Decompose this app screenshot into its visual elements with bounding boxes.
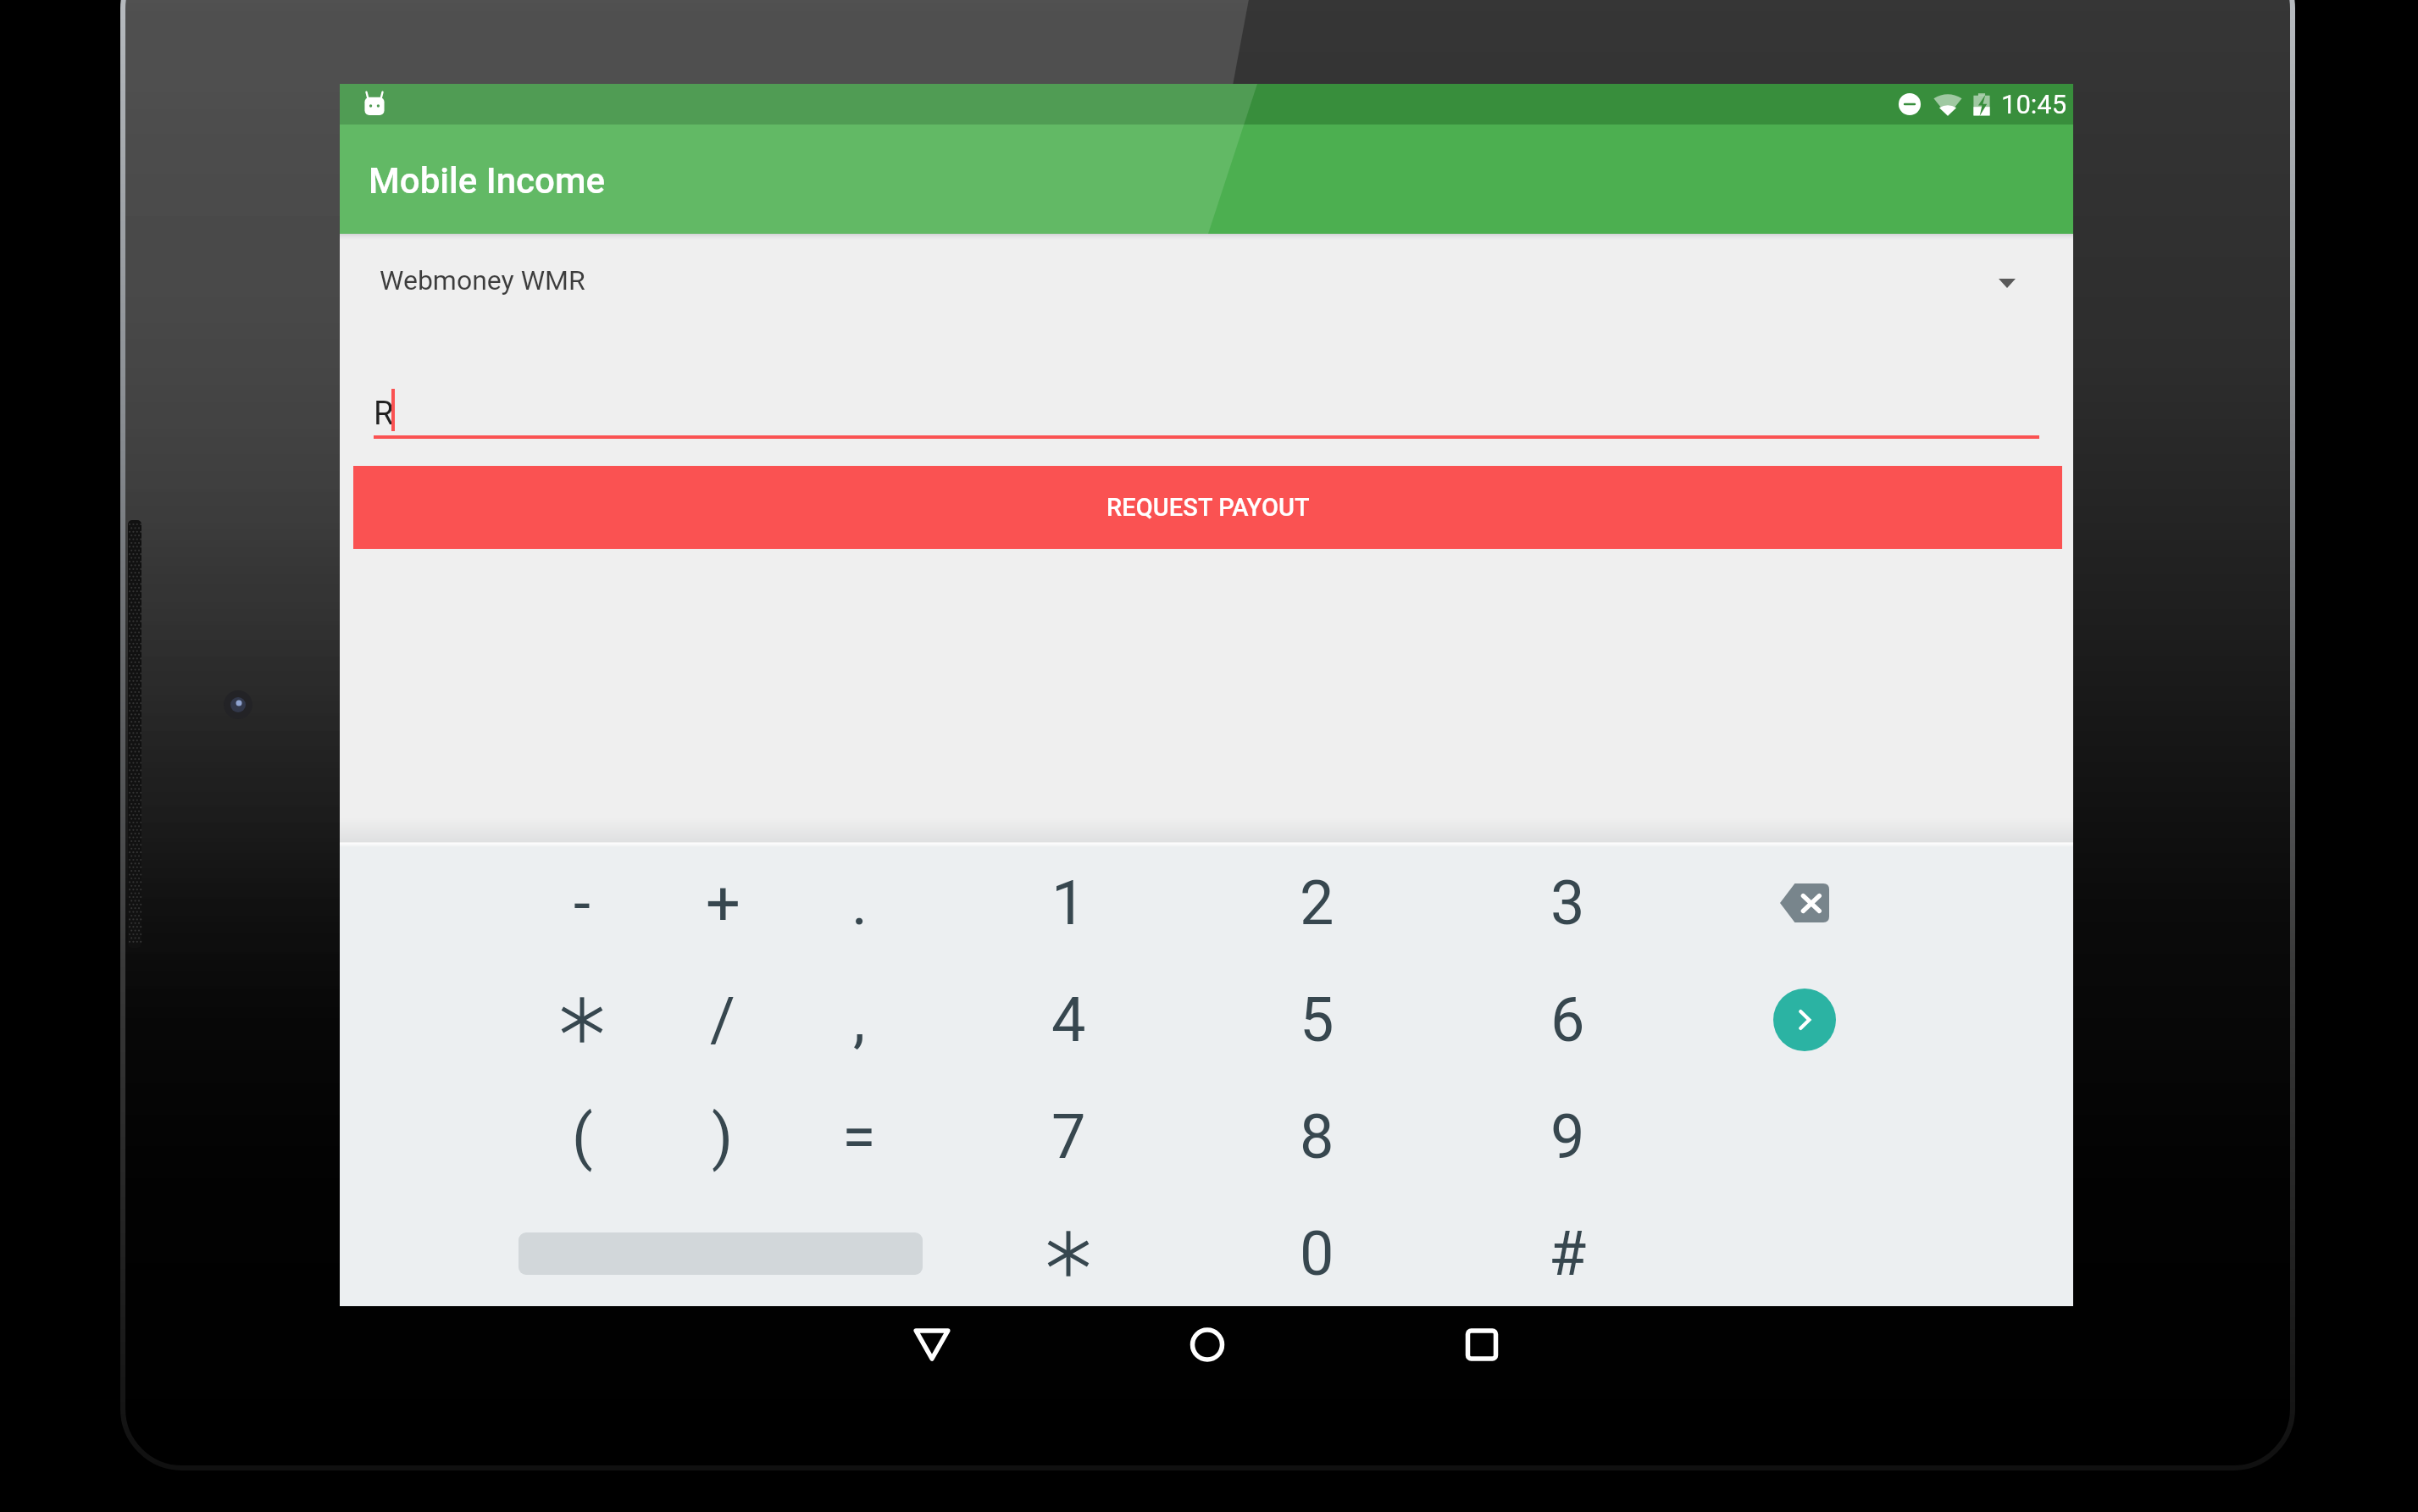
button[interactable]: / — [663, 978, 782, 1062]
button[interactable]: 1 — [1009, 861, 1128, 945]
staticText: / — [710, 984, 735, 1055]
button[interactable]: ( — [523, 1094, 641, 1179]
button[interactable]: Recent apps — [1414, 1309, 1550, 1385]
button[interactable]: 2 — [1257, 861, 1376, 945]
button[interactable]: 0 — [1257, 1211, 1376, 1296]
staticText: 9 — [1550, 1101, 1585, 1172]
staticText: + — [706, 867, 740, 939]
staticText: , — [853, 984, 866, 1055]
staticText: Mobile Income — [369, 160, 606, 202]
staticText: 7 — [1051, 1101, 1086, 1172]
button[interactable]: Next — [1773, 989, 1836, 1051]
button[interactable]: R — [374, 383, 2039, 442]
button[interactable]: Home — [1140, 1309, 1275, 1385]
staticText: Webmoney WMR — [380, 264, 585, 296]
staticText: ) — [712, 1101, 734, 1172]
staticText: = — [842, 1101, 876, 1172]
button[interactable] — [523, 978, 641, 1062]
button[interactable]: 6 — [1508, 978, 1627, 1062]
staticText: # — [1549, 1218, 1587, 1289]
button[interactable]: 5 — [1257, 978, 1376, 1062]
button[interactable]: 7 — [1009, 1094, 1128, 1179]
button[interactable]: 4 — [1009, 978, 1128, 1062]
staticText: 3 — [1550, 867, 1585, 939]
staticText: 5 — [1300, 984, 1334, 1055]
staticText: 0 — [1300, 1218, 1334, 1289]
staticText: - — [574, 867, 591, 939]
button[interactable]: Space — [519, 1232, 923, 1275]
button[interactable]: Back — [864, 1309, 1000, 1385]
button[interactable] — [1009, 1211, 1128, 1296]
button[interactable]: ) — [663, 1094, 782, 1179]
button[interactable]: = — [800, 1094, 918, 1179]
button[interactable]: Webmoney WMR — [340, 234, 2073, 327]
staticText: ( — [572, 1101, 593, 1172]
button[interactable]: # — [1508, 1211, 1627, 1296]
staticText: R — [374, 395, 394, 433]
staticText: 8 — [1300, 1101, 1334, 1172]
button[interactable]: Backspace — [1780, 882, 1829, 924]
staticText: 6 — [1550, 984, 1585, 1055]
staticText: . — [851, 867, 868, 939]
staticText: 1 — [1051, 867, 1086, 939]
button[interactable]: REQUEST PAYOUT — [353, 466, 2062, 549]
button[interactable]: 9 — [1508, 1094, 1627, 1179]
button[interactable]: . — [800, 861, 918, 945]
button[interactable]: + — [663, 861, 782, 945]
staticText: 4 — [1051, 984, 1086, 1055]
staticText: REQUEST PAYOUT — [1106, 493, 1310, 522]
button[interactable]: 3 — [1508, 861, 1627, 945]
button[interactable]: - — [523, 861, 641, 945]
button[interactable]: , — [800, 978, 918, 1062]
staticText: 2 — [1300, 867, 1334, 939]
staticText: 10:45 — [2001, 89, 2067, 119]
button[interactable]: 8 — [1257, 1094, 1376, 1179]
